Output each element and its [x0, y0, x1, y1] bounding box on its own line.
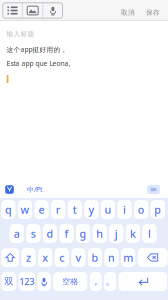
button[interactable]: t — [68, 200, 82, 219]
staticText: g — [80, 226, 87, 241]
button[interactable]: 中/Pt — [27, 181, 53, 198]
button[interactable]: 123 — [19, 272, 35, 291]
staticText: 保存 — [146, 8, 160, 17]
button[interactable]: Hide keyboard — [147, 181, 160, 198]
button[interactable]: n — [104, 248, 119, 267]
button[interactable]: ， — [90, 272, 102, 291]
staticText: f — [64, 226, 68, 241]
staticText: p — [154, 202, 161, 217]
staticText: z — [26, 250, 31, 265]
button[interactable]: k — [126, 224, 140, 243]
button[interactable]: m — [121, 248, 135, 267]
button[interactable]: r — [51, 200, 65, 219]
button[interactable]: y — [84, 200, 98, 219]
button[interactable]: Shift — [1, 248, 19, 267]
button[interactable]: l — [142, 224, 157, 243]
button[interactable]: 空格 — [53, 272, 87, 291]
button[interactable]: p — [151, 200, 165, 219]
staticText: 中/Pt — [27, 185, 42, 194]
staticText: d — [46, 226, 53, 241]
button[interactable]: 。 — [104, 272, 116, 291]
button[interactable]: Checklist — [3, 3, 22, 18]
staticText: s — [31, 226, 36, 241]
staticText: l — [148, 226, 151, 241]
button[interactable]: 输入标题 — [6, 28, 76, 40]
button[interactable]: w — [18, 200, 32, 219]
button[interactable]: z — [21, 248, 36, 267]
staticText: u — [104, 202, 111, 217]
staticText: a — [14, 226, 20, 241]
button[interactable]: q — [1, 200, 15, 219]
button[interactable]: Insert photo — [23, 3, 42, 18]
staticText: e — [39, 202, 45, 217]
button[interactable]: j — [109, 224, 123, 243]
button[interactable]: u — [101, 200, 115, 219]
button[interactable]: f — [59, 224, 74, 243]
staticText: w — [20, 202, 29, 217]
staticText: 。 — [106, 276, 115, 287]
staticText: t — [73, 202, 77, 217]
staticText: i — [123, 202, 126, 217]
staticText: 这个app挺好用的， — [6, 45, 67, 54]
button[interactable]: b — [88, 248, 102, 267]
staticText: j — [115, 226, 118, 241]
button[interactable]: Delete — [138, 248, 167, 267]
staticText: ， — [91, 276, 100, 287]
button[interactable]: s — [26, 224, 40, 243]
button[interactable]: d — [43, 224, 57, 243]
staticText: m — [123, 250, 133, 265]
staticText: c — [59, 250, 64, 265]
button[interactable]: Return — [118, 272, 167, 291]
staticText: 双 — [4, 276, 13, 287]
button[interactable]: Voice input — [43, 3, 63, 18]
button[interactable]: 双 — [1, 272, 16, 291]
staticText: n — [108, 250, 115, 265]
staticText: 输入标题 — [6, 30, 34, 38]
staticText: Esta app que Leona, — [6, 59, 70, 68]
staticText: r — [56, 202, 61, 217]
staticText: b — [91, 250, 98, 265]
button[interactable]: o — [134, 200, 148, 219]
button[interactable]: h — [93, 224, 107, 243]
staticText: v — [75, 250, 81, 265]
button[interactable]: g — [76, 224, 90, 243]
staticText: 空格 — [62, 277, 78, 286]
button[interactable]: e — [34, 200, 49, 219]
staticText: 取消 — [121, 8, 135, 17]
button[interactable]: c — [55, 248, 69, 267]
staticText: k — [130, 226, 136, 241]
button[interactable]: v — [71, 248, 85, 267]
staticText: q — [5, 202, 12, 217]
button[interactable]: x — [38, 248, 52, 267]
staticText: o — [138, 202, 145, 217]
button[interactable]: i — [117, 200, 132, 219]
staticText: y — [88, 202, 94, 217]
button[interactable]: Dictate — [37, 272, 51, 291]
button[interactable]: a — [10, 224, 24, 243]
button[interactable]: 取消 — [118, 4, 138, 21]
button[interactable]: Input method — [2, 181, 16, 198]
staticText: 123 — [19, 275, 34, 288]
staticText: h — [96, 226, 103, 241]
button[interactable]: 保存 — [143, 4, 163, 21]
staticText: x — [42, 250, 48, 265]
